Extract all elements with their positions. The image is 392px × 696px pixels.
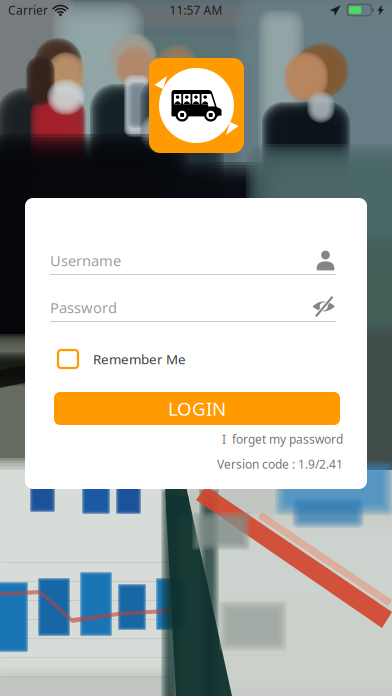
staticText: 11:57 AM	[169, 2, 222, 18]
staticText: I forget my password	[222, 431, 343, 447]
staticText: LOGIN	[168, 396, 226, 421]
staticText: Carrier	[8, 2, 48, 18]
button[interactable]: LOGIN	[54, 392, 340, 425]
staticText: Version code : 1.9/2.41	[217, 456, 343, 472]
staticText: Remember Me	[93, 350, 186, 368]
staticText: Password	[50, 298, 117, 317]
button[interactable]: Password	[50, 294, 336, 322]
button[interactable]: Username	[50, 247, 336, 275]
staticText: Username	[50, 251, 121, 270]
button[interactable]: I forget my password	[25, 431, 343, 447]
button[interactable]: Remember Me	[58, 348, 258, 370]
